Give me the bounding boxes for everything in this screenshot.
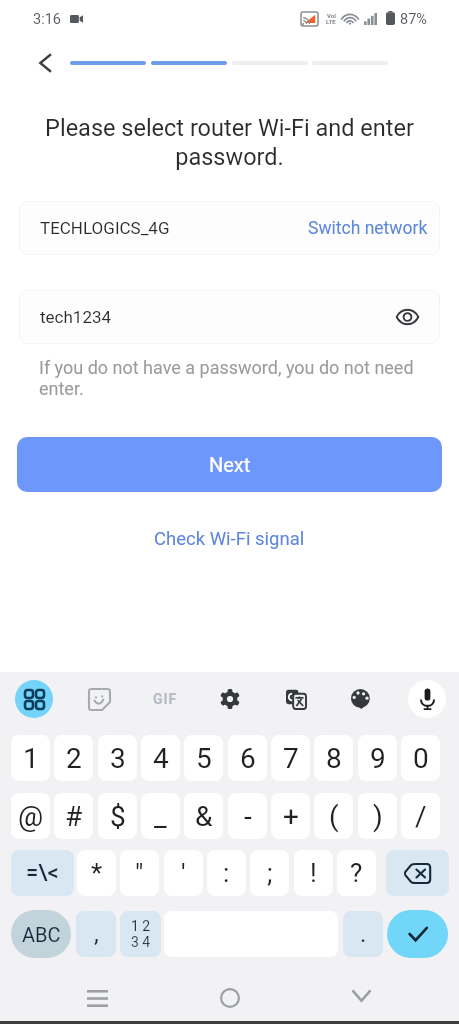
button[interactable]: 7 (271, 735, 310, 781)
staticText: : (223, 858, 230, 888)
button[interactable]: Show password (389, 299, 425, 335)
staticText: / (415, 800, 427, 833)
button[interactable]: 1 2 (120, 911, 161, 957)
staticText: 7 (283, 742, 299, 775)
button[interactable]: ABC (11, 910, 71, 958)
staticText: 8 (326, 742, 342, 775)
button[interactable]: Apps (15, 680, 53, 718)
button[interactable]: GIF (146, 680, 184, 718)
button[interactable]: 4 (141, 735, 180, 781)
button[interactable]: 2 (54, 735, 93, 781)
button[interactable]: Home (208, 979, 252, 1017)
button[interactable]: Translate (277, 680, 315, 718)
button[interactable]: _ (141, 793, 180, 839)
button[interactable]: " (120, 850, 159, 896)
button[interactable]: ? (337, 850, 376, 896)
button[interactable]: ! (294, 850, 333, 896)
staticText: Next (209, 453, 251, 476)
staticText: 3:16 (33, 11, 61, 28)
button[interactable]: Next (17, 437, 442, 492)
staticText: 5 (196, 742, 212, 775)
button[interactable]: Check Wi-Fi signal (148, 522, 311, 556)
staticText: LTE (326, 18, 336, 25)
button[interactable]: 3 (98, 735, 137, 781)
staticText: =\< (26, 860, 59, 886)
button[interactable]: Enter (387, 910, 448, 958)
button[interactable]: + (271, 793, 310, 839)
staticText: ( (329, 800, 339, 833)
button[interactable]: Back (339, 977, 383, 1015)
staticText: 1 (23, 742, 39, 775)
staticText: tech1234 (40, 307, 112, 327)
button[interactable]: Theme (342, 680, 380, 718)
button[interactable]: $ (98, 793, 137, 839)
staticText: 4 (153, 742, 169, 775)
button[interactable]: Backspace (386, 850, 449, 896)
staticText: 3 (110, 742, 126, 775)
button[interactable]: # (54, 793, 93, 839)
staticText: 9 (370, 742, 386, 775)
button[interactable]: =\< (11, 850, 74, 896)
staticText: . (360, 920, 367, 948)
staticText: + (283, 800, 299, 833)
button[interactable]: . (343, 911, 383, 957)
staticText: 0 (413, 742, 429, 775)
staticText: ; (267, 858, 273, 888)
button[interactable]: 5 (184, 735, 223, 781)
button[interactable]: Switch network (308, 218, 428, 239)
button[interactable]: : (207, 850, 246, 896)
button[interactable]: 1 (11, 735, 50, 781)
button[interactable]: , (76, 911, 116, 957)
button[interactable]: 6 (228, 735, 267, 781)
button[interactable]: Back (28, 46, 62, 80)
staticText: ABC (22, 923, 61, 946)
button[interactable]: & (184, 793, 223, 839)
button[interactable]: ( (314, 793, 353, 839)
staticText: @ (18, 800, 44, 833)
button[interactable]: Recents (75, 980, 119, 1016)
staticText: 1 2 (131, 918, 151, 934)
button[interactable]: ) (358, 793, 397, 839)
button[interactable]: 9 (358, 735, 397, 781)
button[interactable]: - (228, 793, 267, 839)
button[interactable]: ' (164, 850, 203, 896)
staticText: 2 (66, 742, 82, 775)
button[interactable]: TECHLOGICS_4G (19, 201, 440, 255)
button[interactable]: Settings (211, 680, 249, 718)
staticText: If you do not have a password, you do no… (39, 357, 420, 399)
staticText: - (244, 800, 252, 833)
staticText: _ (154, 800, 167, 833)
staticText: TECHLOGICS_4G (40, 218, 170, 238)
staticText: GIF (153, 691, 178, 707)
staticText: , (94, 920, 99, 948)
button[interactable]: / (401, 793, 440, 839)
staticText: # (65, 800, 83, 833)
button[interactable]: Stickers (80, 680, 118, 718)
button[interactable]: Voice input (408, 680, 446, 718)
staticText: 6 (240, 742, 256, 775)
button[interactable]: 0 (401, 735, 440, 781)
button[interactable]: ; (250, 850, 289, 896)
staticText: 3 4 (131, 934, 151, 950)
button[interactable]: tech1234 (19, 290, 440, 344)
staticText: $ (110, 800, 126, 833)
staticText: ? (350, 858, 363, 888)
staticText: ! (310, 858, 317, 888)
button[interactable]: * (77, 850, 116, 896)
staticText: ) (373, 800, 383, 833)
button[interactable]: 8 (314, 735, 353, 781)
staticText: ' (181, 858, 186, 888)
staticText: & (195, 800, 213, 833)
staticText: 87% (400, 11, 427, 28)
staticText: * (91, 858, 103, 888)
staticText: " (135, 858, 144, 888)
button[interactable]: @ (11, 793, 50, 839)
staticText: Vol (327, 12, 336, 19)
staticText: Please select router Wi-Fi and enter pas… (22, 114, 437, 171)
